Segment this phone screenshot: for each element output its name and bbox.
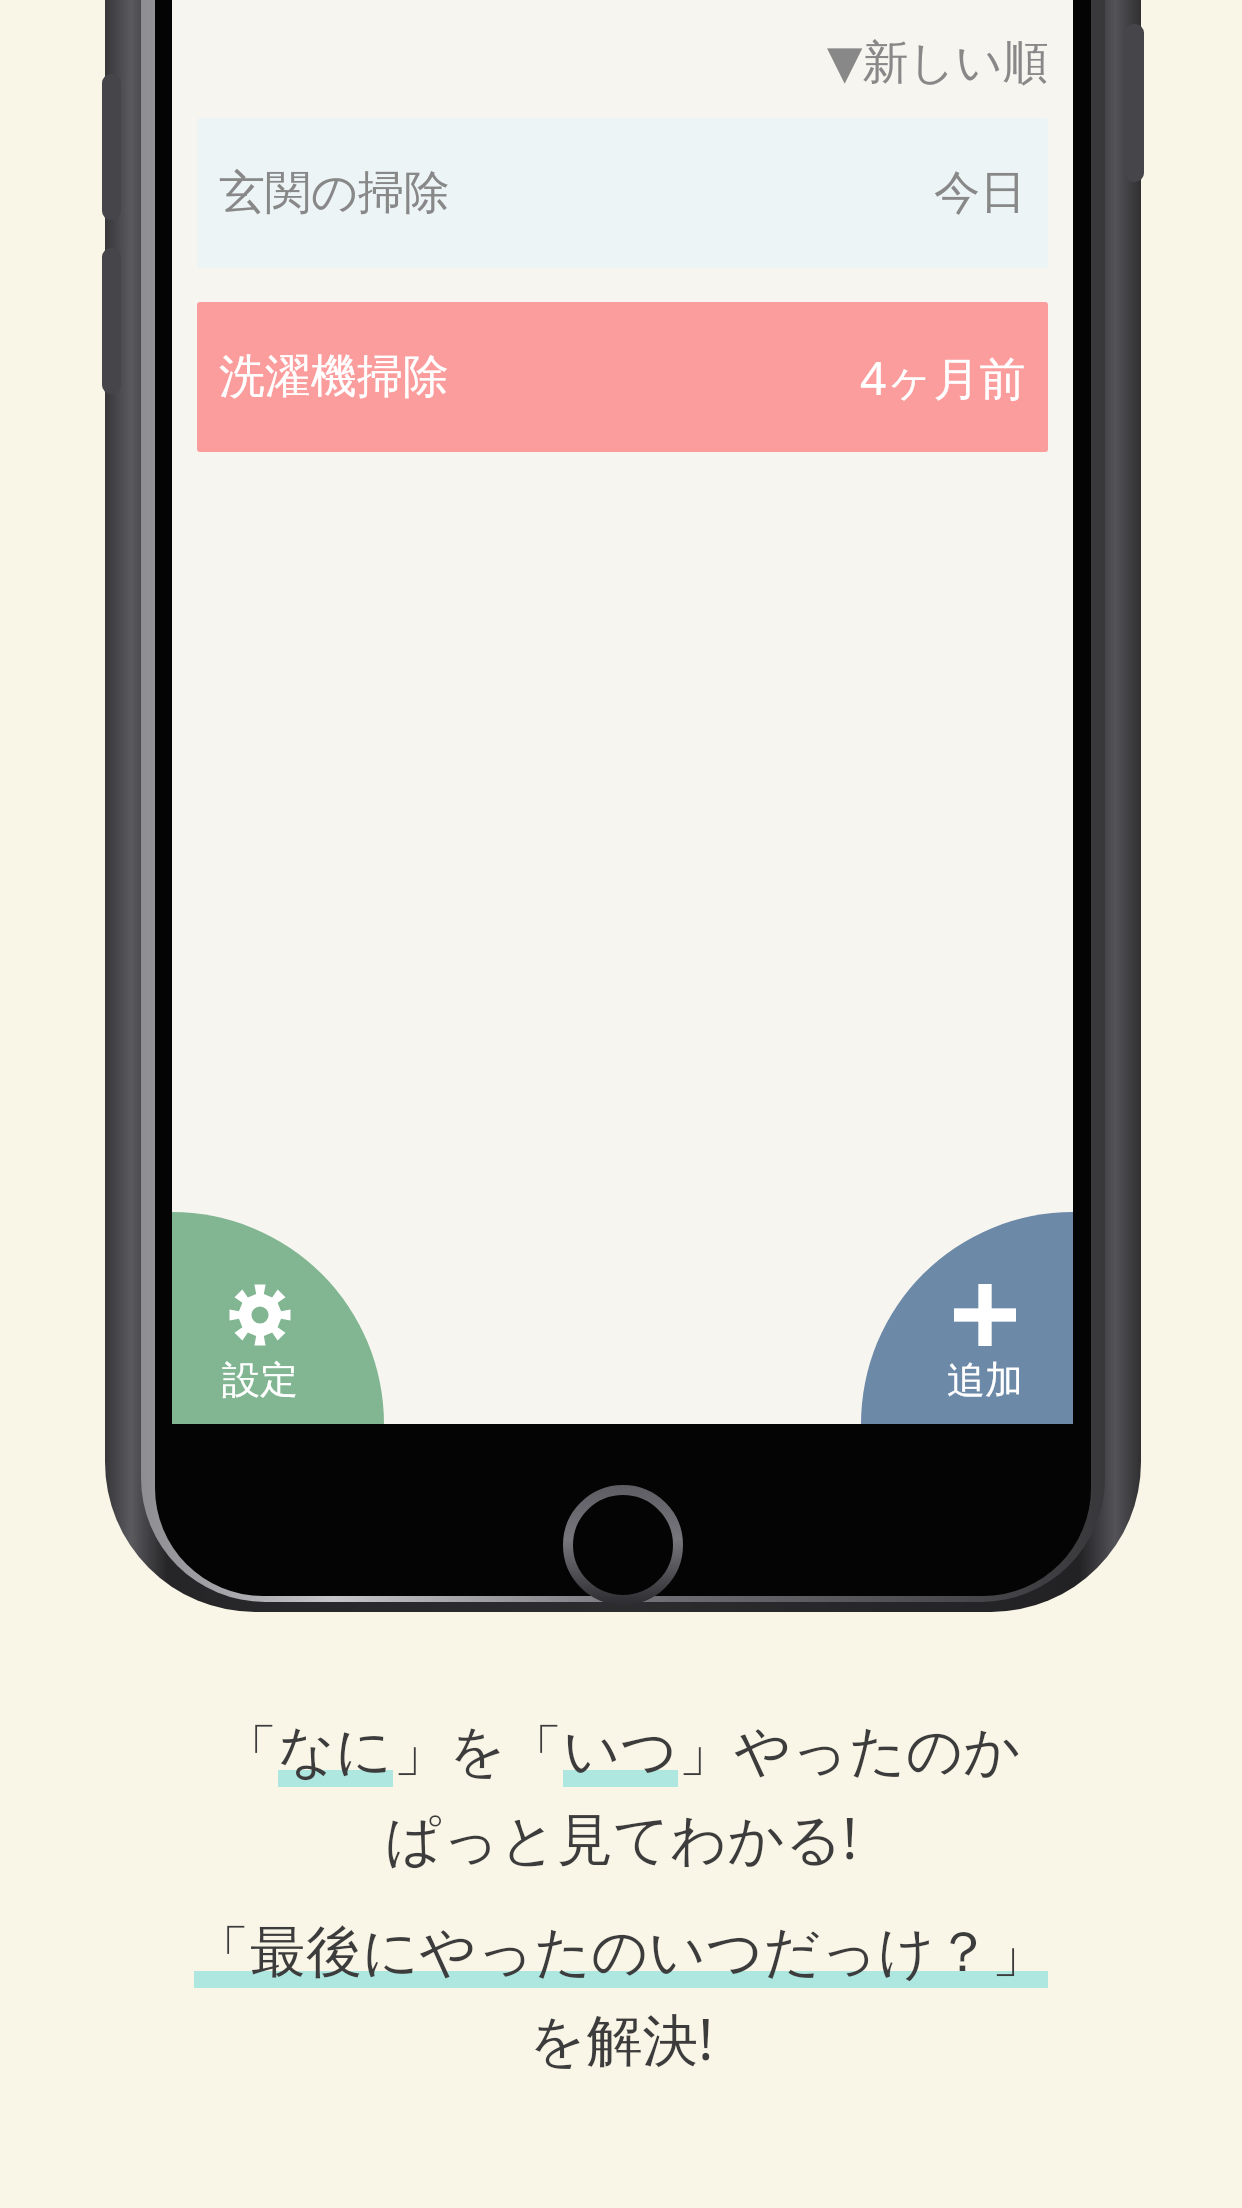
button[interactable]: 設定	[172, 1212, 384, 1424]
button[interactable]: 洗濯機掃除	[197, 302, 1048, 452]
staticText: 今日	[934, 164, 1026, 222]
staticText: 4ヶ月前	[860, 346, 1026, 409]
button[interactable]: ▼新しい順	[172, 34, 1049, 92]
staticText: 」を	[393, 1716, 507, 1787]
other: 追加	[954, 1284, 1016, 1346]
other: 設定	[229, 1284, 291, 1346]
button[interactable]: 玄関の掃除	[197, 118, 1048, 268]
staticText: を解決!	[529, 2000, 714, 2076]
staticText: なに	[278, 1716, 393, 1787]
staticText: ▼新しい順	[827, 34, 1049, 92]
staticText: 洗濯機掃除	[219, 348, 449, 406]
staticText: ぱっと見てわかる!	[385, 1799, 858, 1875]
staticText: 追加	[947, 1356, 1023, 1404]
staticText: 玄関の掃除	[219, 164, 451, 222]
staticText: 設定	[222, 1356, 298, 1404]
staticText: 「	[507, 1716, 563, 1787]
button[interactable]: 追加	[861, 1212, 1073, 1424]
staticText: 」やったのか	[678, 1716, 1021, 1787]
staticText: 「	[222, 1716, 278, 1787]
staticText: 「最後にやったのいつだっけ？」	[194, 1917, 1048, 1988]
staticText: いつ	[563, 1716, 678, 1787]
